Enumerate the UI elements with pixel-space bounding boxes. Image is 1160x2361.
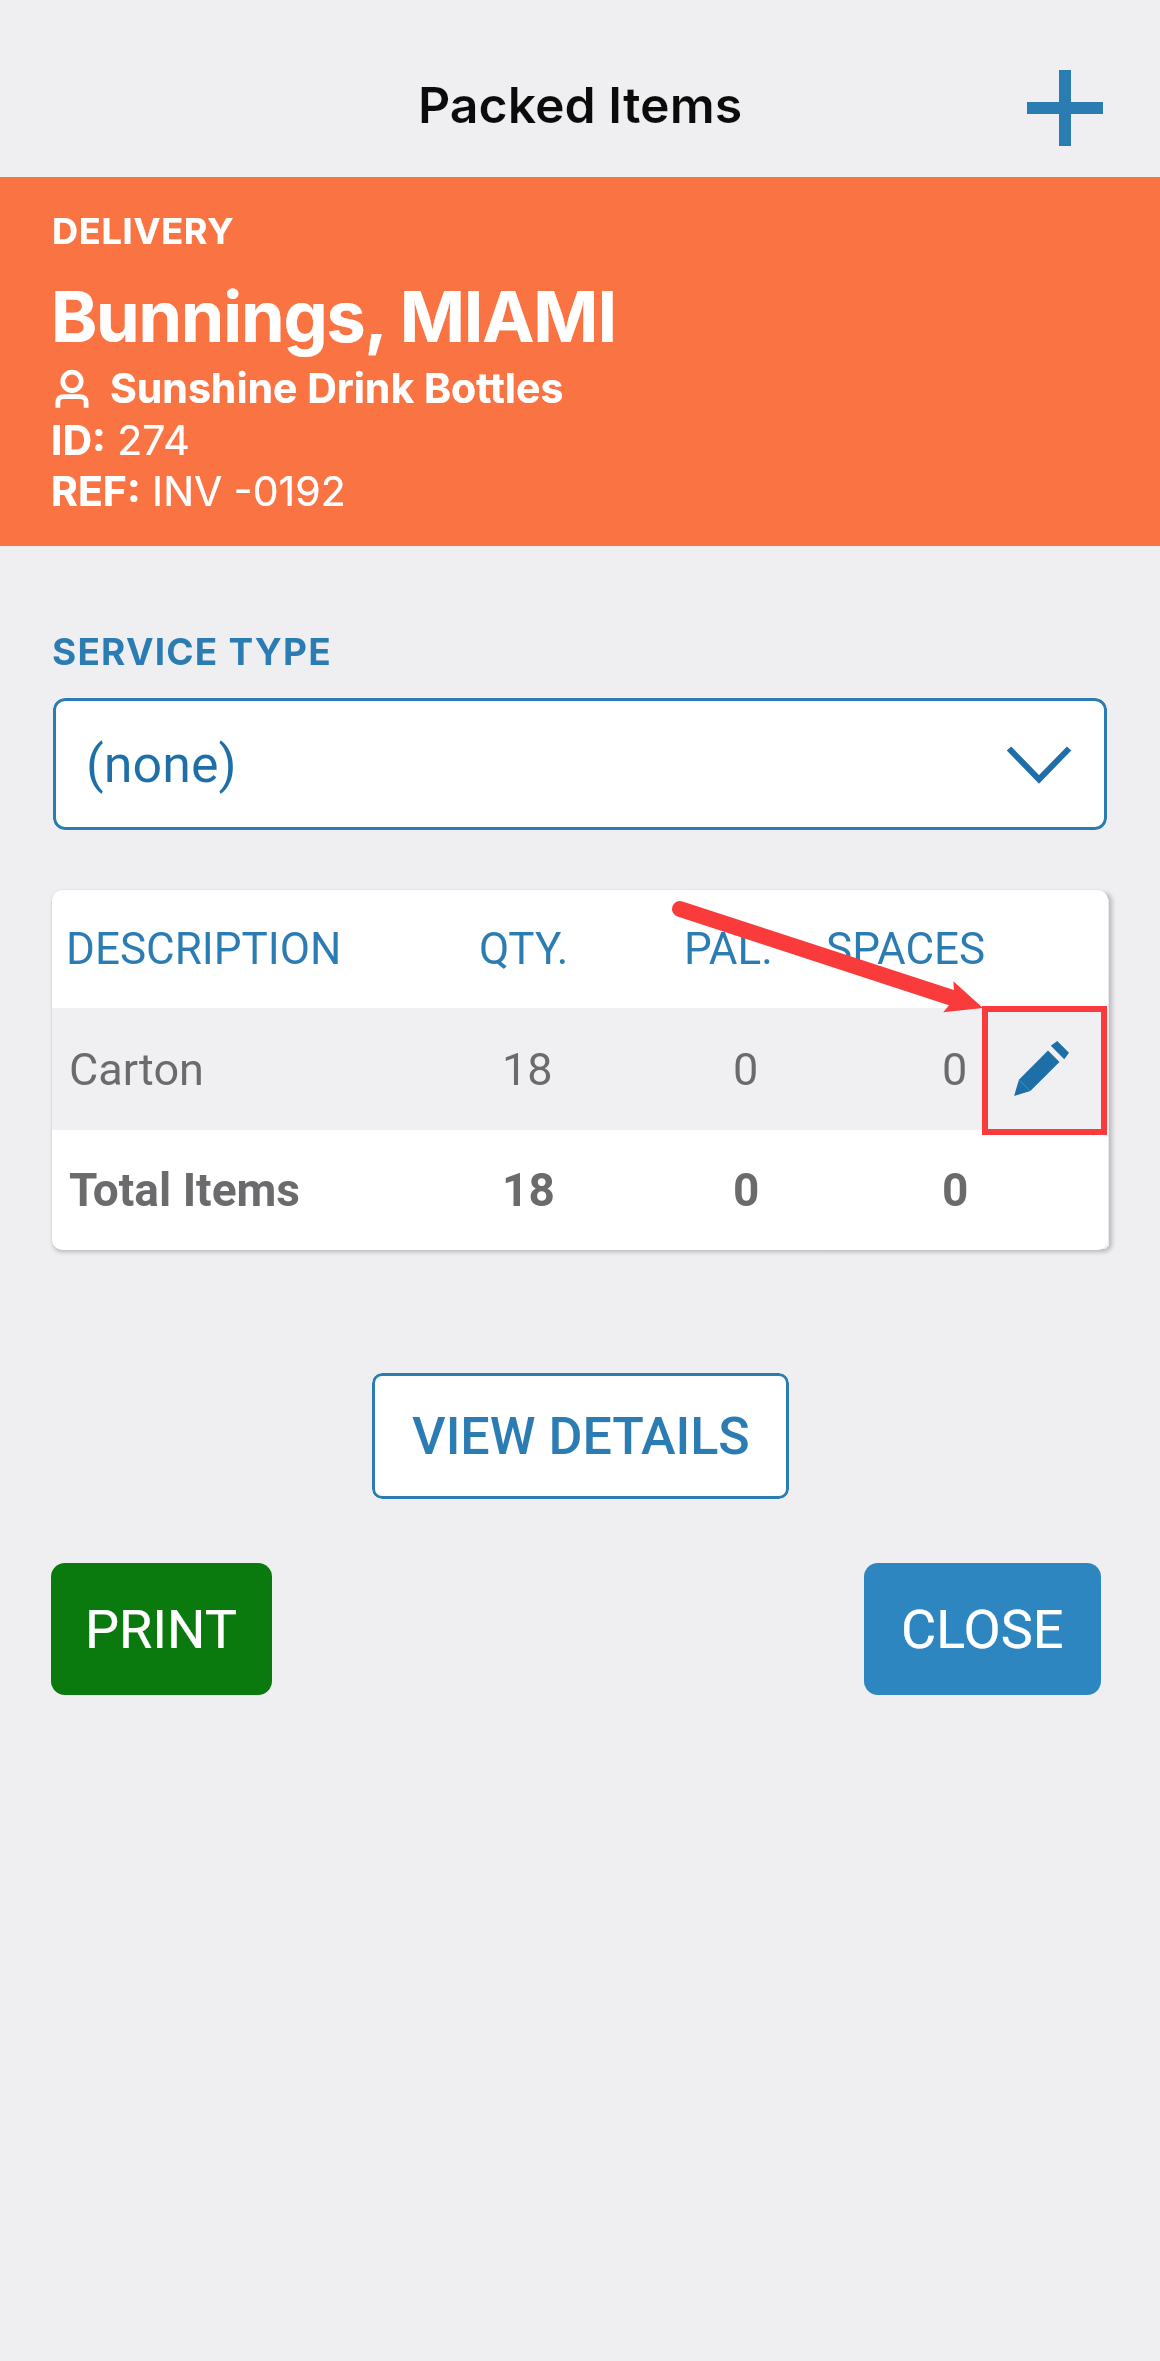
staticText: PAL. xyxy=(684,923,773,975)
staticText: Packed Items xyxy=(418,75,743,135)
staticText: (none) xyxy=(86,734,237,795)
button[interactable]: (none) xyxy=(53,698,1107,830)
staticText: CLOSE xyxy=(901,1598,1064,1661)
staticText: DESCRIPTION xyxy=(66,923,342,975)
staticText: Bunnings, MIAMI xyxy=(51,274,616,359)
button[interactable]: Add xyxy=(1015,58,1115,158)
staticText: DELIVERY xyxy=(52,209,235,253)
staticText: SPACES xyxy=(826,923,986,975)
staticText: VIEW DETAILS xyxy=(412,1406,750,1467)
button[interactable]: VIEW DETAILS xyxy=(372,1373,789,1499)
staticText: REF: INV -0192 xyxy=(51,466,346,516)
staticText: Carton xyxy=(69,1043,204,1096)
button[interactable]: CLOSE xyxy=(864,1563,1101,1695)
button[interactable]: Edit xyxy=(980,1008,1101,1130)
staticText: 0 xyxy=(733,1043,759,1096)
staticText: 0 xyxy=(942,1043,968,1096)
staticText: 0 xyxy=(733,1163,760,1217)
staticText: 18 xyxy=(502,1043,553,1096)
staticText: Sunshine Drink Bottles xyxy=(110,363,564,413)
staticText: 18 xyxy=(502,1163,555,1217)
button[interactable]: Carton xyxy=(52,1008,1108,1130)
staticText: PRINT xyxy=(85,1598,238,1661)
button[interactable]: PRINT xyxy=(51,1563,272,1695)
staticText: QTY. xyxy=(479,923,569,975)
staticText: SERVICE TYPE xyxy=(52,629,332,674)
staticText: ID: 274 xyxy=(51,415,190,465)
staticText: Total Items xyxy=(69,1163,300,1217)
staticText: 0 xyxy=(942,1163,969,1217)
